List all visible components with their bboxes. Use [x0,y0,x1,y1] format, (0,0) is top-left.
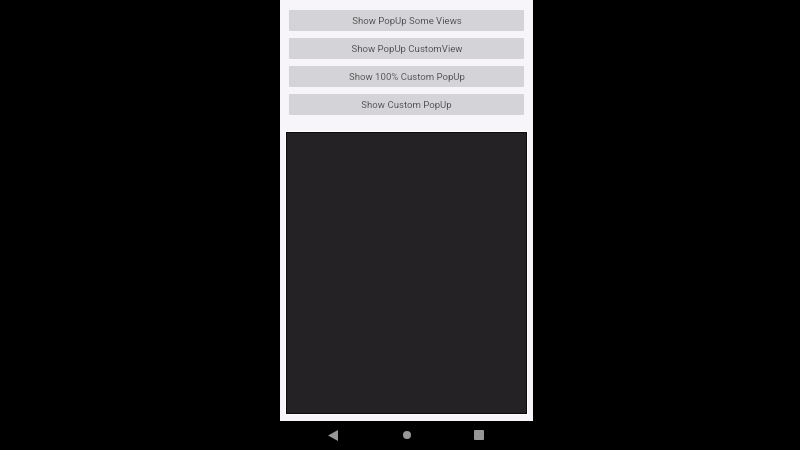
button[interactable]: Show PopUp Some Views [289,10,524,31]
staticText: Show PopUp CustomView [351,43,463,54]
staticText: Show Custom PopUp [361,99,452,110]
staticText: Show 100% Custom PopUp [349,71,465,82]
button[interactable]: Back [320,423,345,448]
button[interactable]: Home [394,422,419,447]
button[interactable]: Show PopUp CustomView [289,38,524,59]
button[interactable]: Recent apps [466,422,491,447]
button[interactable]: Show Custom PopUp [289,94,524,115]
button[interactable]: Show 100% Custom PopUp [289,66,524,87]
staticText: Show PopUp Some Views [352,15,462,26]
